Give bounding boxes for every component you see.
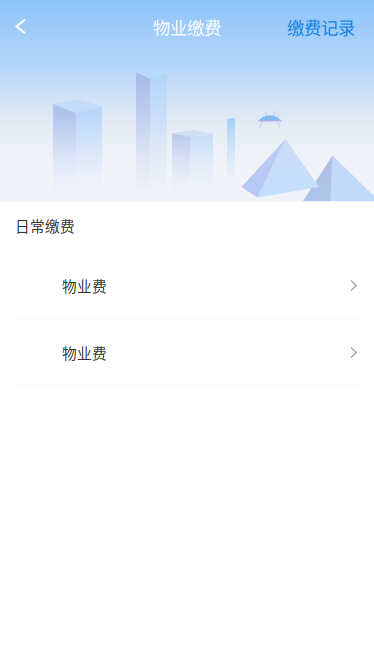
staticText: 日常缴费 <box>15 215 75 236</box>
button[interactable]: 返回 <box>0 0 44 54</box>
button[interactable]: 缴费记录 <box>287 0 374 54</box>
staticText: 物业缴费 <box>153 14 221 40</box>
staticText: 物业费 <box>62 342 107 363</box>
button[interactable]: 物业费 <box>0 320 374 385</box>
staticText: 缴费记录 <box>287 14 355 40</box>
staticText: 物业费 <box>62 275 107 296</box>
button[interactable]: 物业费 <box>0 253 374 318</box>
